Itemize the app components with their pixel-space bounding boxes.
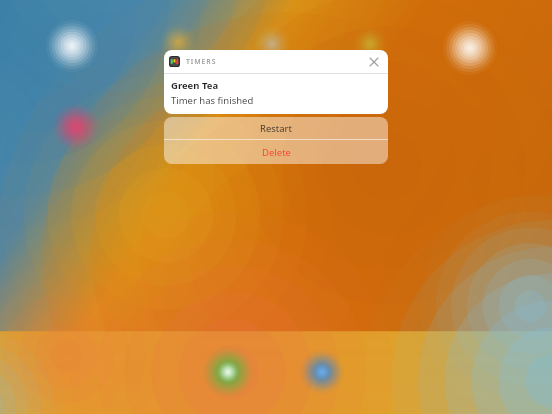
staticText: Timer has finished	[171, 94, 254, 107]
staticText: TIMERS	[186, 57, 217, 67]
staticText: Green Tea	[171, 79, 219, 92]
button[interactable]: Close	[365, 53, 383, 71]
button[interactable]: Green Tea	[164, 74, 388, 114]
staticText: Restart	[260, 122, 292, 135]
staticText: Delete	[262, 146, 291, 159]
button[interactable]: Delete	[164, 140, 388, 164]
button[interactable]: Restart	[164, 117, 388, 139]
